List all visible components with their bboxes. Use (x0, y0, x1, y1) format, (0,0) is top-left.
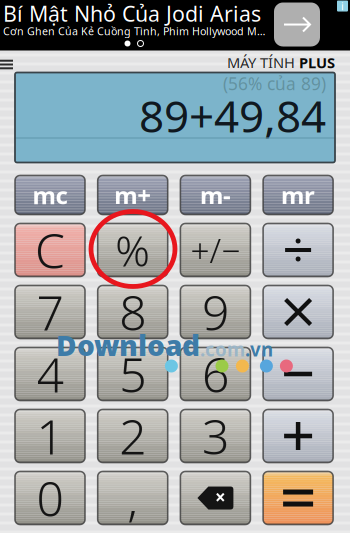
staticText: Bí Mật Nhỏ Của Jodi Arias (3, 0, 261, 28)
button[interactable]: 6 (180, 347, 250, 400)
button[interactable]: m+ (98, 175, 168, 214)
staticText: 8 (119, 280, 146, 344)
button[interactable]: C (15, 223, 85, 276)
staticText: 6 (202, 342, 229, 406)
button[interactable]: Delete (180, 471, 250, 524)
button[interactable]: , (98, 471, 168, 524)
staticText: % (115, 222, 150, 278)
staticText: 1 (36, 404, 63, 468)
staticText: i (341, 0, 344, 13)
button[interactable]: Add (263, 409, 333, 462)
staticText: (56% của 89) (223, 72, 326, 95)
button[interactable]: Menu (0, 59, 13, 69)
staticText: C (35, 218, 65, 282)
staticText: , (127, 466, 138, 530)
button[interactable]: 7 (15, 285, 85, 338)
button[interactable]: Divide (263, 223, 333, 276)
staticText: Cơn Ghen Của Kẻ Cuồng Tình, Phim Hollywo… (3, 24, 269, 38)
button[interactable]: 2 (98, 409, 168, 462)
staticText: PLUS (299, 53, 335, 72)
staticText: mc (32, 179, 67, 211)
button[interactable]: 5 (98, 347, 168, 400)
staticText: 89+49,84 (139, 86, 326, 145)
button[interactable]: Subtract (263, 347, 333, 400)
button[interactable]: 8 (98, 285, 168, 338)
button[interactable]: Equals (263, 471, 333, 524)
button[interactable]: 0 (15, 471, 85, 524)
staticText: 7 (36, 280, 63, 344)
staticText: × (215, 485, 226, 509)
staticText: MÁY TÍNH (227, 53, 299, 72)
button[interactable]: 3 (180, 409, 250, 462)
staticText: 9 (202, 280, 229, 344)
staticText: 2 (119, 404, 146, 468)
button[interactable]: 9 (180, 285, 250, 338)
button[interactable]: Multiply (263, 285, 333, 338)
staticText: 4 (36, 342, 63, 406)
staticText: 0 (36, 466, 63, 530)
button[interactable]: mc (15, 175, 85, 214)
button[interactable]: 1 (15, 409, 85, 462)
staticText: .vn (245, 337, 273, 362)
staticText: mr (281, 179, 315, 211)
staticText: 5 (119, 342, 146, 406)
button[interactable]: m- (180, 175, 250, 214)
button[interactable]: 4 (15, 347, 85, 400)
staticText: +/− (190, 228, 240, 272)
staticText: Download (56, 326, 200, 364)
button[interactable]: % (98, 223, 168, 276)
staticText: 3 (202, 404, 229, 468)
button[interactable]: mr (263, 175, 333, 214)
button[interactable]: Bí Mật Nhỏ Của Jodi Arias (0, 0, 350, 50)
staticText: m- (200, 179, 231, 211)
button[interactable]: +/− (180, 223, 250, 276)
staticText: m+ (114, 179, 151, 211)
staticText: .com (200, 337, 245, 362)
